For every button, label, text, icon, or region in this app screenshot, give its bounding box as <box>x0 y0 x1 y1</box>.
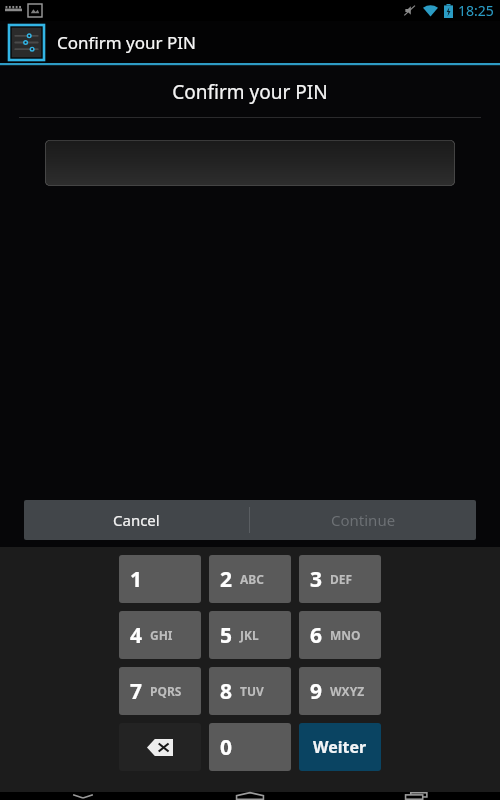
other: App icon <box>9 25 44 60</box>
button[interactable]: Cancel <box>24 500 249 540</box>
staticText: Continue <box>331 510 396 530</box>
button[interactable]: Recent apps <box>333 792 500 800</box>
button[interactable]: 4 <box>119 611 201 659</box>
staticText: WXYZ <box>330 683 365 699</box>
button[interactable]: 0 <box>209 723 291 771</box>
button[interactable]: 5 <box>209 611 291 659</box>
staticText: PQRS <box>150 683 182 699</box>
staticText: JKL <box>240 627 259 643</box>
staticText: Weiter <box>313 736 367 758</box>
staticText: 18:25 <box>458 1 494 20</box>
staticText: MNO <box>330 627 361 643</box>
staticText: 0 <box>220 733 233 762</box>
button[interactable]: Weiter <box>299 723 381 771</box>
button[interactable] <box>45 140 455 186</box>
staticText: 1 <box>130 565 143 594</box>
button[interactable]: 7 <box>119 667 201 715</box>
button[interactable]: 1 <box>119 555 201 603</box>
button[interactable]: Delete <box>119 723 201 771</box>
staticText: Cancel <box>113 510 160 530</box>
staticText: DEF <box>330 571 353 587</box>
staticText: Confirm your PIN <box>57 31 196 54</box>
staticText: 6 <box>310 621 323 650</box>
staticText: TUV <box>240 683 264 699</box>
button[interactable]: Continue <box>250 500 476 540</box>
staticText: GHI <box>150 627 173 643</box>
button[interactable]: 9 <box>299 667 381 715</box>
button[interactable]: Hide keyboard <box>0 792 166 800</box>
staticText: 8 <box>220 677 233 706</box>
staticText: ABC <box>240 571 264 587</box>
staticText: 2 <box>220 565 233 594</box>
button[interactable]: 3 <box>299 555 381 603</box>
staticText: 9 <box>310 677 323 706</box>
staticText: Confirm your PIN <box>0 79 500 105</box>
staticText: 7 <box>130 677 143 706</box>
staticText: 3 <box>310 565 323 594</box>
button[interactable]: 2 <box>209 555 291 603</box>
staticText: 5 <box>220 621 233 650</box>
button[interactable]: 8 <box>209 667 291 715</box>
button[interactable]: App icon <box>0 21 196 63</box>
button[interactable]: 6 <box>299 611 381 659</box>
button[interactable]: Home <box>166 792 333 800</box>
staticText: 4 <box>130 621 143 650</box>
